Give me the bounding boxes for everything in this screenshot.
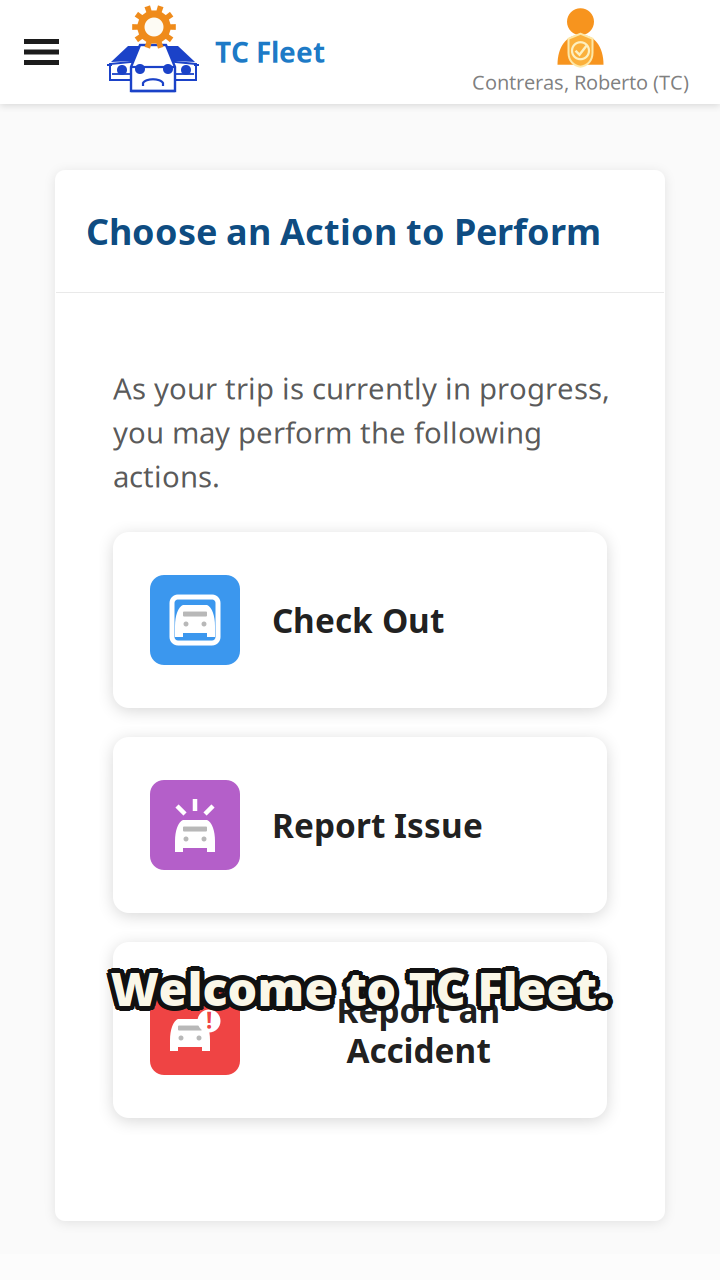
button[interactable]: Contreras, Roberto (TC) xyxy=(472,9,720,95)
staticText: actions. xyxy=(113,456,220,495)
staticText: Welcome to TC Fleet. xyxy=(107,961,606,1023)
staticText: Check Out xyxy=(272,598,444,642)
staticText: Welcome to TC Fleet. xyxy=(110,954,609,1016)
staticText: Welcome to TC Fleet. xyxy=(108,959,607,1021)
staticText: TC Fleet xyxy=(215,33,325,71)
staticText: Report an xyxy=(336,988,500,1032)
staticText: Welcome to TC Fleet. xyxy=(114,954,613,1016)
staticText: As your trip is currently in progress, xyxy=(113,368,610,407)
staticText: Accident xyxy=(346,1028,490,1072)
button[interactable]: Check Out xyxy=(113,532,607,708)
staticText: Welcome to TC Fleet. xyxy=(106,954,605,1016)
staticText: Welcome to TC Fleet. xyxy=(114,960,613,1022)
staticText: Report Issue xyxy=(272,803,483,847)
staticText: Welcome to TC Fleet. xyxy=(105,957,604,1019)
staticText: Welcome to TC Fleet. xyxy=(107,957,606,1019)
staticText: Choose an Action to Perform xyxy=(86,207,601,255)
staticText: Welcome to TC Fleet. xyxy=(110,952,609,1014)
staticText: Contreras, Roberto (TC) xyxy=(472,69,689,95)
staticText: Welcome to TC Fleet. xyxy=(106,960,605,1022)
button[interactable]: ! xyxy=(113,942,607,1118)
staticText: Welcome to TC Fleet. xyxy=(113,961,612,1023)
button[interactable]: Report Issue xyxy=(113,737,607,913)
staticText: ! xyxy=(206,1005,212,1035)
staticText: Welcome to TC Fleet. xyxy=(115,957,614,1019)
staticText: Welcome to TC Fleet. xyxy=(113,957,612,1019)
staticText: Welcome to TC Fleet. xyxy=(108,955,607,1017)
staticText: Welcome to TC Fleet. xyxy=(110,957,609,1019)
staticText: Welcome to TC Fleet. xyxy=(110,962,609,1024)
staticText: Welcome to TC Fleet. xyxy=(112,955,611,1017)
staticText: you may perform the following xyxy=(113,412,542,451)
staticText: Welcome to TC Fleet. xyxy=(113,953,612,1015)
staticText: Welcome to TC Fleet. xyxy=(112,959,611,1021)
staticText: Welcome to TC Fleet. xyxy=(107,953,606,1015)
button[interactable]: Menu xyxy=(0,0,83,104)
staticText: Welcome to TC Fleet. xyxy=(110,960,609,1022)
